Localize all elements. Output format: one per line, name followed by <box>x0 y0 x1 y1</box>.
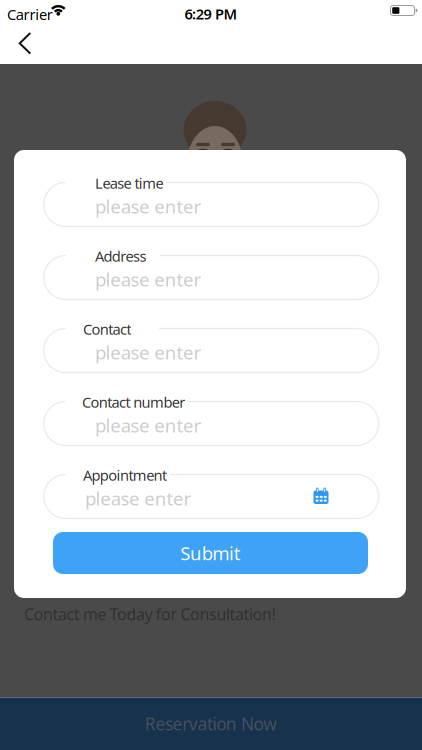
staticText: Contact <box>83 319 131 339</box>
staticText: Submit <box>180 541 241 565</box>
staticText: Contact me Today for Consultation! <box>24 603 275 625</box>
staticText: Reservation Now <box>145 712 277 735</box>
button[interactable]: Address <box>43 244 380 301</box>
button[interactable]: Contact number <box>43 390 380 447</box>
button[interactable]: Reservation Now <box>0 697 422 750</box>
staticText: please enter <box>85 486 192 511</box>
button[interactable]: Back <box>8 24 52 64</box>
staticText: Address <box>95 246 146 266</box>
staticText: please enter <box>95 340 202 365</box>
staticText: please enter <box>95 194 202 219</box>
staticText: please enter <box>95 267 202 292</box>
staticText: please enter <box>95 413 202 438</box>
staticText: Appointment <box>83 465 167 485</box>
staticText: Contact number <box>82 392 185 412</box>
button[interactable]: Appointment <box>43 463 380 520</box>
button[interactable]: Lease time <box>43 171 380 228</box>
staticText: 6:29 PM <box>184 4 238 23</box>
button[interactable]: Submit <box>53 532 368 574</box>
staticText: Carrier <box>7 4 53 24</box>
staticText: Lease time <box>95 173 164 193</box>
button[interactable]: Contact <box>43 317 380 374</box>
